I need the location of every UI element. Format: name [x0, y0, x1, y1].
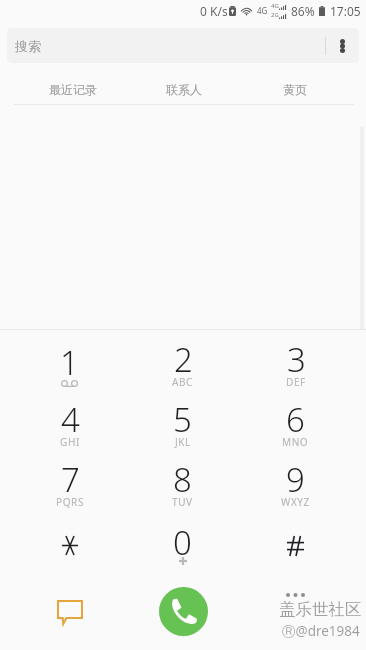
staticText: 黄页	[283, 82, 307, 97]
button[interactable]: More	[273, 573, 317, 617]
staticText: WXYZ	[281, 495, 310, 509]
button[interactable]: 7	[13, 456, 126, 516]
button[interactable]: 4	[13, 396, 126, 456]
staticText: GHI	[60, 435, 80, 449]
staticText: MNO	[282, 435, 309, 449]
button[interactable]: 8	[126, 456, 239, 516]
button[interactable]: 6	[239, 396, 352, 456]
button[interactable]: 1	[13, 336, 126, 396]
staticText: 4	[61, 397, 80, 442]
button[interactable]: 黄页	[239, 67, 350, 105]
button[interactable]: 9	[239, 456, 352, 516]
staticText: DEF	[286, 375, 306, 389]
staticText: 0 K/s	[200, 3, 228, 19]
staticText: 最近记录	[49, 82, 97, 97]
staticText: Ⓡ@dre1984	[282, 622, 360, 640]
staticText: 1	[60, 340, 79, 385]
button[interactable]: 2	[126, 336, 239, 396]
staticText: 3	[287, 337, 306, 382]
staticText: 17:05	[330, 3, 361, 19]
button[interactable]: 最近记录	[17, 67, 128, 105]
button[interactable]: 5	[126, 396, 239, 456]
button[interactable]: pound	[239, 516, 352, 576]
button[interactable]: star	[13, 516, 126, 576]
staticText: 搜索	[15, 38, 41, 54]
button[interactable]: 0	[126, 516, 239, 576]
staticText: 4G	[257, 5, 268, 16]
staticText: 2G	[271, 11, 279, 19]
button[interactable]: 3	[239, 336, 352, 396]
staticText: 2	[174, 337, 193, 382]
button[interactable]: Message	[48, 590, 92, 634]
staticText: JKL	[175, 435, 191, 449]
staticText: 4G	[271, 2, 279, 10]
staticText: 86%	[291, 3, 315, 19]
staticText: 0	[173, 520, 192, 565]
staticText: ABC	[172, 375, 194, 389]
staticText: 5	[173, 397, 192, 442]
staticText: 6	[286, 397, 305, 442]
staticText: TUV	[172, 495, 193, 509]
button[interactable]: More options	[325, 28, 359, 63]
button[interactable]: 联系人	[128, 67, 239, 105]
staticText: 盖乐世社区	[279, 599, 362, 620]
staticText: 8	[173, 457, 192, 502]
staticText: PQRS	[56, 495, 84, 509]
staticText: 9	[286, 457, 305, 502]
staticText: 联系人	[166, 82, 202, 97]
button[interactable]: Call	[159, 587, 208, 636]
button[interactable]: 搜索	[7, 28, 359, 63]
staticText: 7	[61, 457, 80, 502]
